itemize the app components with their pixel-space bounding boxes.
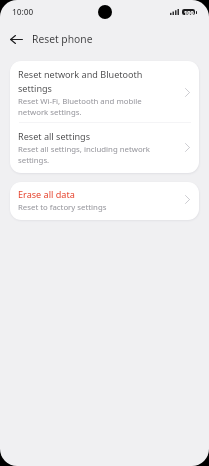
button[interactable]: Reset all settings [10,123,199,173]
button[interactable]: Reset network and Bluetooth settings [10,61,199,122]
staticText: Reset to factory settings [18,201,107,212]
staticText: Erase all data [18,187,75,201]
staticText: Reset all settings, including network se… [18,143,158,165]
button[interactable]: Erase all data [10,182,199,220]
staticText: 100 [184,9,194,15]
staticText: Reset Wi-Fi, Bluetooth and mobile networ… [18,95,158,117]
staticText: Reset phone [32,32,93,46]
staticText: 10:00 [12,6,34,17]
staticText: Reset all settings [18,129,91,143]
staticText: Reset network and Bluetooth settings [18,67,158,95]
button[interactable]: Back [4,27,28,51]
